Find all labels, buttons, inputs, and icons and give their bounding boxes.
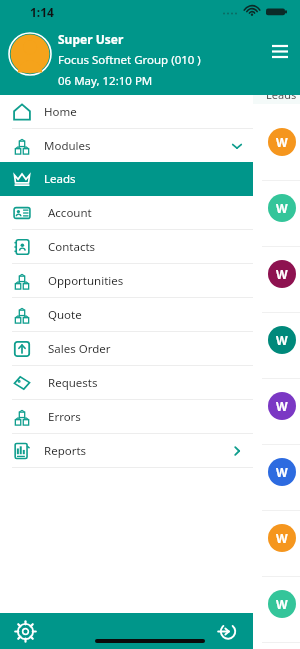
button[interactable]: Requests xyxy=(0,366,253,399)
staticText: 06 May, 12:10 PM xyxy=(58,73,153,89)
staticText: Focus Softnet Group (010 ) xyxy=(58,52,201,68)
button[interactable]: Logout xyxy=(209,614,243,648)
button[interactable]: Menu xyxy=(260,32,300,72)
button[interactable]: Settings xyxy=(8,614,42,648)
staticText: Modules xyxy=(44,138,91,154)
staticText: W xyxy=(276,530,288,546)
staticText: Opportunities xyxy=(48,273,124,289)
staticText: W xyxy=(276,398,288,414)
staticText: W xyxy=(276,332,288,348)
staticText: Super User xyxy=(58,31,124,47)
button[interactable]: Contacts xyxy=(0,230,253,263)
staticText: W xyxy=(276,464,288,480)
button[interactable]: Errors xyxy=(0,400,253,433)
staticText: W xyxy=(276,266,288,282)
button[interactable]: Sales Order xyxy=(0,332,253,365)
staticText: W xyxy=(276,134,288,150)
button[interactable]: Modules xyxy=(0,129,253,162)
staticText: Contacts xyxy=(48,239,96,255)
staticText: W xyxy=(276,596,288,612)
staticText: W xyxy=(276,200,288,216)
staticText: Errors xyxy=(48,409,81,425)
staticText: All Leads xyxy=(266,72,300,102)
staticText: Account xyxy=(48,205,92,221)
button[interactable]: Account xyxy=(0,196,253,229)
staticText: Requests xyxy=(48,375,98,391)
staticText: 1:14 xyxy=(30,4,54,20)
staticText: Home xyxy=(44,104,77,120)
staticText: Reports xyxy=(44,443,87,459)
button[interactable]: Reports xyxy=(0,434,253,467)
staticText: Leads xyxy=(44,171,76,187)
staticText: Quote xyxy=(48,307,82,323)
button[interactable]: Home xyxy=(0,95,253,128)
staticText: Sales Order xyxy=(48,341,111,357)
button[interactable]: Opportunities xyxy=(0,264,253,297)
button[interactable]: Leads xyxy=(0,162,253,196)
button[interactable]: Quote xyxy=(0,298,253,331)
